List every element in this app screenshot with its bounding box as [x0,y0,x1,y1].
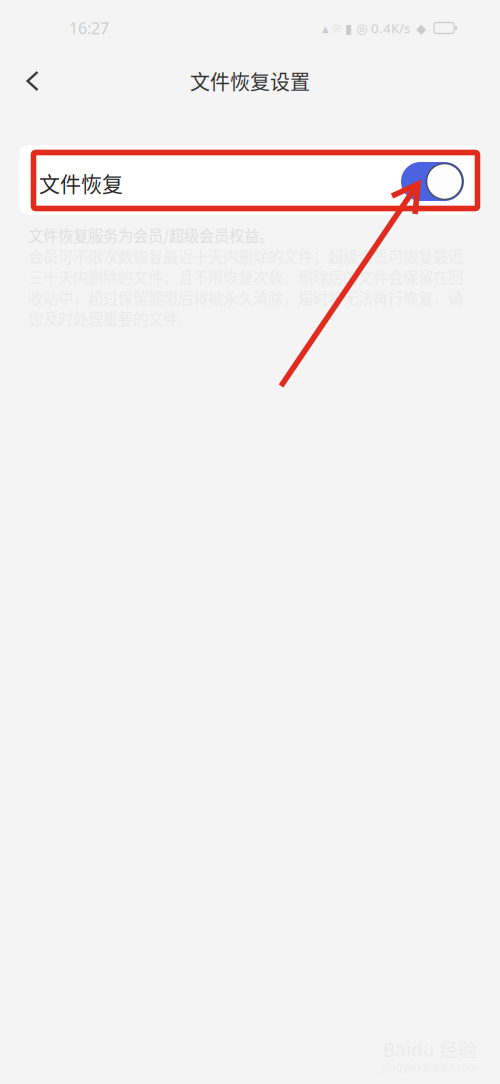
staticText: 文件恢复 [39,167,123,198]
staticText: 文件恢复服务为会员/超级会员权益。 [28,224,274,246]
staticText: 三十天内删除的文件，且不限恢复次数。删除后的文件会保留在回 [28,266,463,288]
staticText: 文件恢复设置 [190,66,310,95]
staticText: 16:27 [69,17,109,39]
staticText: 您及时处理重要的文件。 [28,307,193,329]
staticText: 收站中，超过保留期限后将被永久清除，届时将无法再行恢复，请 [28,286,463,309]
staticText: ▴ ⌾ ▮ ◎ 0.4K/s ◆ [322,19,434,37]
button[interactable]: 文件恢复 [19,145,481,215]
staticText: 会员可不限次数恢复最近十天内删除的文件；超级会员可恢复最近 [28,245,463,267]
staticText: Baidu 经验 [383,1035,477,1062]
button[interactable]: Back [0,56,55,105]
